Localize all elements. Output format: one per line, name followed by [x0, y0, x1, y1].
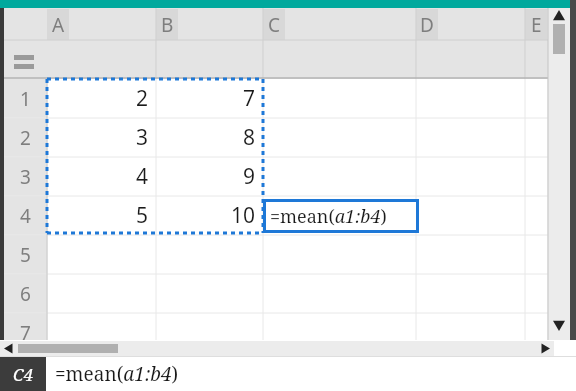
button[interactable]: D: [416, 9, 525, 40]
button[interactable]: E: [525, 9, 548, 40]
button[interactable]: 1: [4, 79, 47, 118]
staticText: E: [531, 12, 542, 38]
staticText: =mean(a1:b4): [270, 204, 387, 229]
staticText: 6: [20, 281, 31, 307]
staticText: C4: [13, 363, 34, 386]
button[interactable]: 4: [47, 157, 156, 196]
button[interactable]: 3: [47, 118, 156, 157]
button[interactable]: Scroll up: [548, 8, 570, 32]
button[interactable]: 3: [4, 157, 47, 196]
staticText: 2: [136, 84, 149, 113]
button[interactable]: 5: [47, 196, 156, 235]
staticText: 1: [20, 86, 31, 112]
button[interactable]: 5: [4, 235, 47, 274]
staticText: A: [52, 12, 65, 38]
staticText: 5: [20, 242, 31, 268]
button[interactable]: 6: [4, 274, 47, 313]
button[interactable]: =mean(a1:b4): [263, 199, 419, 233]
button[interactable]: 7: [156, 79, 263, 118]
button[interactable]: Menu: [4, 40, 47, 79]
button[interactable]: Scroll left: [0, 341, 18, 356]
button[interactable]: 10: [156, 196, 263, 235]
staticText: 3: [136, 123, 149, 152]
button[interactable]: 9: [156, 157, 263, 196]
button[interactable]: Scroll right: [536, 341, 554, 356]
staticText: 7: [20, 320, 31, 346]
staticText: 10: [231, 201, 256, 230]
button[interactable]: Scroll down: [548, 316, 570, 340]
button[interactable]: 4: [4, 196, 47, 235]
button[interactable]: C: [263, 9, 416, 40]
staticText: 9: [243, 162, 256, 191]
button[interactable]: 8: [156, 118, 263, 157]
button[interactable]: 7: [4, 313, 47, 352]
staticText: 4: [136, 162, 149, 191]
button[interactable]: C4: [0, 357, 576, 391]
staticText: C: [268, 12, 281, 38]
staticText: 7: [243, 84, 256, 113]
button[interactable]: B: [156, 9, 263, 40]
button[interactable]: 2: [4, 118, 47, 157]
staticText: 2: [20, 125, 31, 151]
staticText: 5: [136, 201, 149, 230]
button[interactable]: 2: [47, 79, 156, 118]
staticText: B: [161, 12, 174, 38]
staticText: =mean(a1:b4): [55, 361, 179, 387]
staticText: 8: [243, 123, 256, 152]
button[interactable]: A: [47, 9, 156, 40]
staticText: 3: [20, 164, 31, 190]
staticText: 4: [20, 203, 31, 229]
staticText: D: [420, 12, 434, 38]
